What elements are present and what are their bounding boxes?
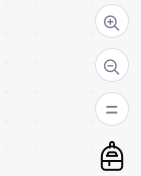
button[interactable]: Zoom in bbox=[95, 4, 129, 38]
button[interactable]: Zoom out bbox=[95, 48, 129, 82]
button[interactable]: Inventory bbox=[101, 136, 123, 171]
button[interactable]: Reset zoom bbox=[95, 92, 129, 126]
